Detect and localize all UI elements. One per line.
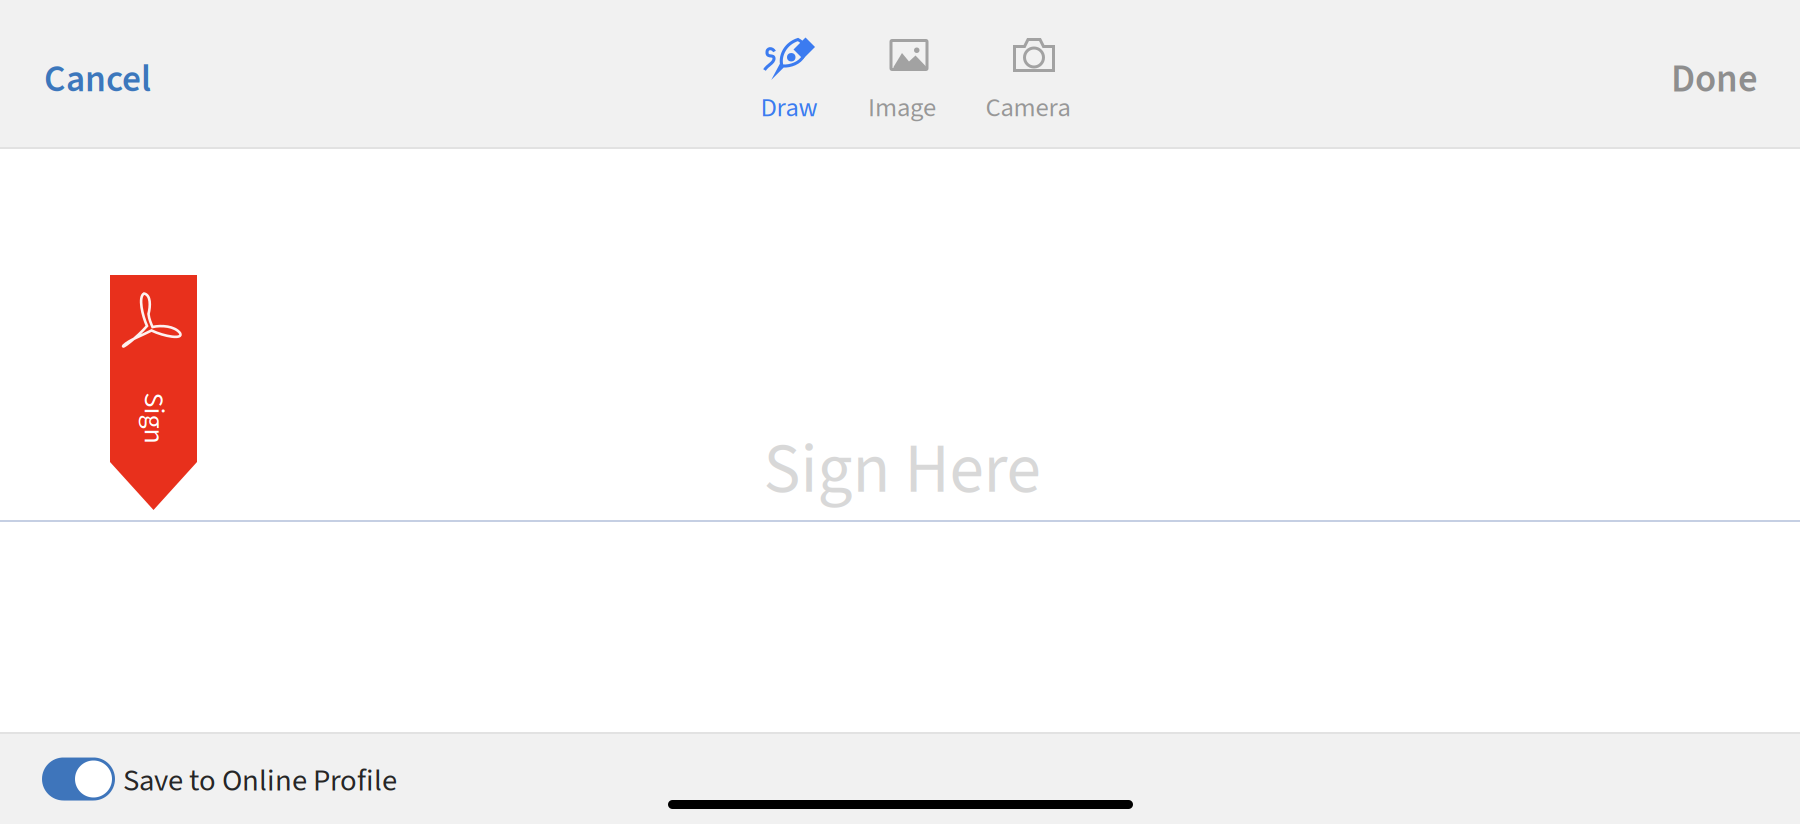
button[interactable]: Save to Online Profile [42, 757, 115, 800]
staticText: Draw [760, 89, 817, 127]
staticText: Save to Online Profile [123, 759, 397, 803]
button[interactable]: Image [847, 30, 957, 126]
staticText: Sign Here [763, 421, 1040, 519]
staticText: Camera [985, 89, 1070, 127]
button[interactable]: Draw [734, 30, 844, 126]
button[interactable]: Cancel [0, 0, 214, 147]
button[interactable]: Sign Here [0, 0, 1800, 824]
staticText: Sign [128, 398, 179, 438]
button[interactable]: Done [1588, 0, 1800, 147]
button[interactable]: Camera [973, 30, 1083, 126]
staticText: Cancel [44, 53, 151, 106]
staticText: Done [1671, 52, 1758, 107]
staticText: Image [868, 89, 936, 127]
